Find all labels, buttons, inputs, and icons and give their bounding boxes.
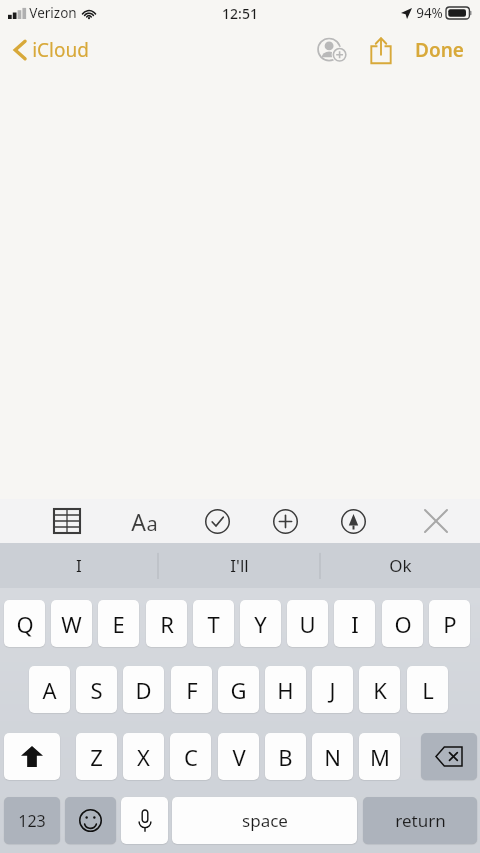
button[interactable]: Ok <box>320 543 480 588</box>
button[interactable]: H <box>265 666 306 713</box>
button[interactable]: A <box>29 666 70 713</box>
button[interactable]: I'll <box>158 543 320 588</box>
staticText: Z <box>90 742 103 772</box>
staticText: U <box>299 609 316 639</box>
button[interactable]: space <box>172 797 357 844</box>
button[interactable]: L <box>407 666 448 713</box>
button[interactable]: Z <box>76 733 117 780</box>
button[interactable]: N <box>312 733 353 780</box>
staticText: Ok <box>389 554 412 577</box>
button[interactable]: R <box>146 600 187 647</box>
staticText: S <box>90 675 103 705</box>
staticText: A <box>131 506 146 537</box>
staticText: V <box>232 742 246 772</box>
button[interactable]: iCloud <box>10 33 93 67</box>
button[interactable]: T <box>193 600 234 647</box>
button[interactable]: S <box>76 666 117 713</box>
button[interactable]: G <box>218 666 259 713</box>
button[interactable]: V <box>218 733 259 780</box>
staticText: M <box>370 742 390 772</box>
staticText: 123 <box>18 810 46 832</box>
button[interactable]: Delete <box>421 733 477 780</box>
staticText: O <box>394 609 412 639</box>
button[interactable]: Emoji <box>65 797 116 844</box>
staticText: I <box>76 554 82 577</box>
button[interactable]: Shift <box>4 733 60 780</box>
staticText: I <box>351 609 359 639</box>
button[interactable]: Dictation <box>121 797 168 844</box>
button[interactable]: D <box>123 666 164 713</box>
staticText: N <box>324 742 341 772</box>
staticText: Done <box>415 37 464 63</box>
staticText: 94% <box>416 4 443 22</box>
button[interactable]: K <box>359 666 400 713</box>
button[interactable]: Add People <box>309 26 357 74</box>
button[interactable]: I <box>334 600 375 647</box>
staticText: Verizon <box>29 4 77 22</box>
button[interactable]: Done <box>405 30 474 70</box>
button[interactable]: Numbers <box>4 797 60 844</box>
staticText: T <box>207 609 220 639</box>
button[interactable]: return <box>363 797 477 844</box>
button[interactable]: Share <box>357 26 405 74</box>
button[interactable]: Checklist <box>195 499 239 543</box>
staticText: space <box>242 809 288 832</box>
staticText: D <box>135 675 152 705</box>
button[interactable]: J <box>312 666 353 713</box>
button[interactable]: C <box>170 733 211 780</box>
button[interactable]: Y <box>240 600 281 647</box>
staticText: P <box>443 609 457 639</box>
staticText: F <box>186 675 198 705</box>
staticText: Q <box>16 609 34 639</box>
staticText: 12:51 <box>222 4 258 23</box>
button[interactable]: W <box>51 600 92 647</box>
button[interactable]: B <box>265 733 306 780</box>
staticText: J <box>329 675 336 705</box>
button[interactable]: Text format <box>122 499 166 543</box>
button[interactable]: Q <box>4 600 45 647</box>
staticText: Y <box>254 609 267 639</box>
button[interactable]: P <box>429 600 470 647</box>
button[interactable]: I <box>0 543 158 588</box>
button[interactable]: O <box>382 600 423 647</box>
button[interactable]: U <box>287 600 328 647</box>
staticText: K <box>373 675 387 705</box>
staticText: G <box>230 675 247 705</box>
staticText: W <box>61 609 82 639</box>
staticText: X <box>137 742 150 772</box>
button[interactable]: Table <box>45 499 89 543</box>
staticText: B <box>278 742 293 772</box>
staticText: return <box>395 809 446 832</box>
button[interactable]: Add attachment <box>263 499 307 543</box>
button[interactable]: F <box>171 666 212 713</box>
staticText: H <box>277 675 294 705</box>
button[interactable]: Close keyboard <box>414 499 458 543</box>
staticText: iCloud <box>32 37 89 63</box>
button[interactable]: Markup <box>331 499 375 543</box>
staticText: I'll <box>230 554 249 577</box>
staticText: R <box>160 609 174 639</box>
staticText: A <box>42 675 57 705</box>
staticText: L <box>422 675 434 705</box>
button[interactable]: M <box>359 733 400 780</box>
staticText: C <box>184 742 198 772</box>
button[interactable]: X <box>123 733 164 780</box>
button[interactable]: E <box>98 600 139 647</box>
staticText: E <box>112 609 125 639</box>
staticText: a <box>146 510 158 537</box>
